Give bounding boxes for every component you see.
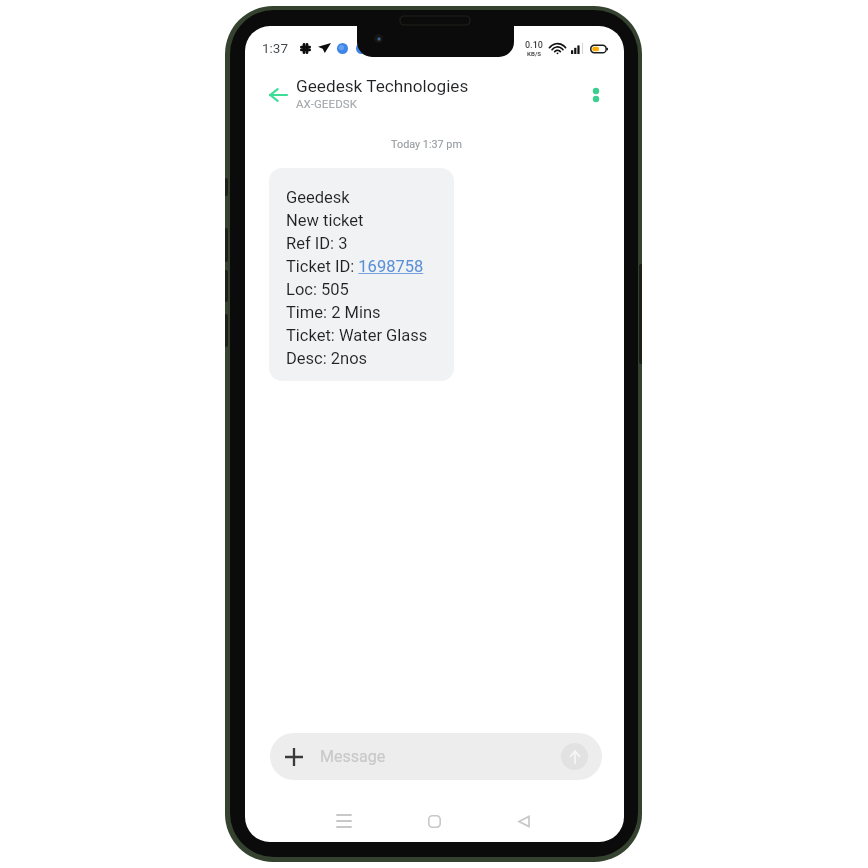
staticText: KB/S bbox=[527, 50, 541, 57]
staticText: 0.10 bbox=[525, 40, 543, 51]
button[interactable]: Attach bbox=[281, 744, 307, 770]
button[interactable]: Back bbox=[256, 73, 300, 117]
button[interactable]: Recent apps bbox=[322, 799, 366, 842]
staticText: 1:37 bbox=[262, 40, 289, 56]
button[interactable]: Send bbox=[561, 743, 588, 770]
button[interactable]: Geedesk New ticket Ref ID: 3 Ticket ID: … bbox=[269, 168, 454, 381]
staticText: Message bbox=[320, 747, 561, 766]
button[interactable]: Back bbox=[502, 799, 546, 842]
button[interactable]: Attach bbox=[270, 733, 602, 780]
staticText: Geedesk Technologies bbox=[296, 76, 469, 96]
button[interactable]: More options bbox=[576, 75, 616, 115]
staticText: Today 1:37 pm bbox=[245, 138, 616, 151]
button[interactable]: Home bbox=[412, 799, 456, 842]
button[interactable]: Geedesk Technologies bbox=[296, 76, 486, 120]
staticText: AX-GEEDSK bbox=[296, 97, 358, 110]
staticText: Geedesk New ticket Ref ID: 3 Ticket ID: … bbox=[286, 185, 428, 369]
